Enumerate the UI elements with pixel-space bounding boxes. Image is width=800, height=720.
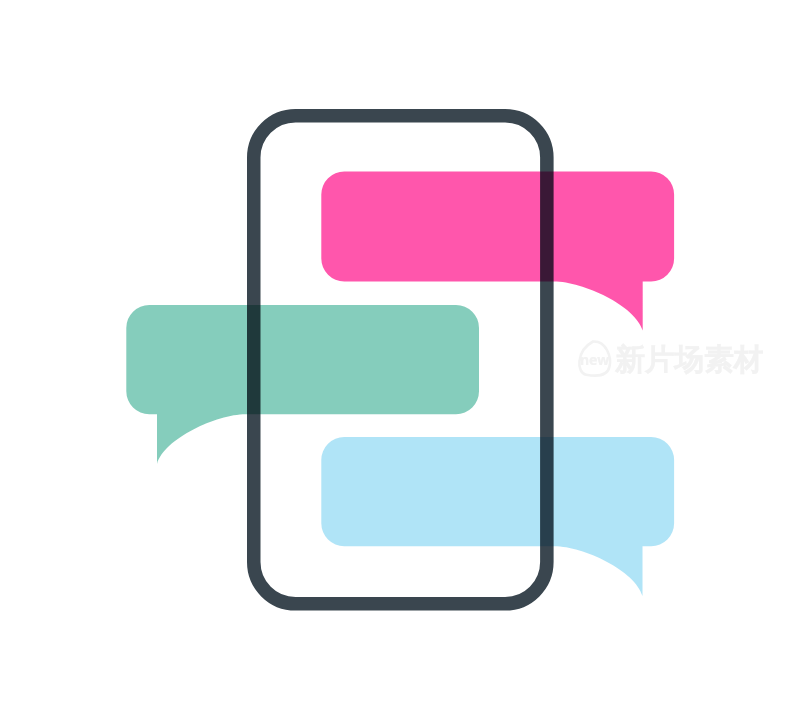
staticText: new: [580, 350, 610, 369]
staticText: 新片场素材: [615, 342, 763, 379]
button[interactable]: Chat conversation on a phone illustratio…: [0, 0, 800, 720]
